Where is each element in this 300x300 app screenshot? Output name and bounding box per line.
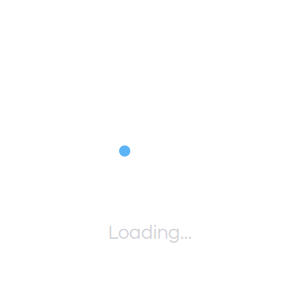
staticText: Loading... [108, 222, 192, 243]
